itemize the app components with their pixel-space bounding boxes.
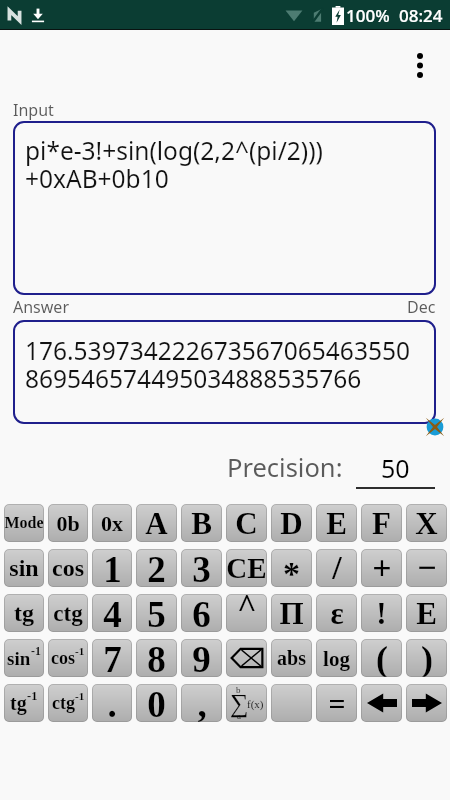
staticText: tg: [14, 600, 34, 627]
button[interactable]: A: [136, 504, 177, 542]
button[interactable]: 0: [136, 684, 177, 722]
button[interactable]: Move cursor right: [406, 684, 447, 722]
staticText: Answer: [13, 296, 69, 318]
button[interactable]: 8: [136, 639, 177, 677]
staticText: -1: [27, 689, 38, 703]
button[interactable]: Move cursor left: [361, 684, 402, 722]
button[interactable]: .: [92, 684, 132, 722]
staticText: 0: [147, 684, 166, 722]
button[interactable]: X: [406, 504, 447, 542]
staticText: 7: [103, 639, 122, 677]
staticText: -1: [31, 645, 41, 658]
staticText: 100%: [346, 4, 390, 27]
staticText: E: [416, 596, 437, 630]
staticText: =: [328, 687, 346, 720]
button[interactable]: *: [271, 549, 312, 587]
button[interactable]: !: [361, 594, 402, 632]
button[interactable]: 9: [181, 639, 222, 677]
button[interactable]: 50: [356, 451, 435, 485]
staticText: ,: [197, 684, 207, 722]
button[interactable]: abs: [271, 639, 312, 677]
button[interactable]: 7: [92, 639, 132, 677]
button[interactable]: 3: [181, 549, 222, 587]
button[interactable]: Resize answer field: [425, 417, 445, 437]
staticText: .: [107, 684, 117, 722]
button[interactable]: C: [226, 504, 267, 542]
staticText: F: [372, 506, 391, 540]
staticText: 1: [103, 549, 122, 587]
button[interactable]: [271, 684, 312, 722]
button[interactable]: +: [361, 549, 402, 587]
staticText: 6: [192, 594, 211, 632]
staticText: 0b: [56, 511, 80, 535]
button[interactable]: ctg: [48, 684, 88, 722]
button[interactable]: 0b: [48, 504, 88, 542]
button[interactable]: sin: [4, 549, 44, 587]
button[interactable]: cos: [48, 549, 88, 587]
button[interactable]: 0x: [92, 504, 132, 542]
staticText: cos: [52, 555, 84, 582]
staticText: 8: [147, 639, 166, 677]
staticText: Dec: [407, 296, 436, 318]
button[interactable]: D: [271, 504, 312, 542]
staticText: 08:24: [399, 4, 443, 27]
button[interactable]: Sum: [226, 684, 267, 722]
staticText: /: [332, 549, 342, 587]
staticText: 5: [147, 594, 166, 632]
button[interactable]: pi*e-3!+sin(log(2,2^(pi/2))) +0xAB+0b10: [13, 121, 436, 295]
button[interactable]: More options: [402, 47, 438, 83]
button[interactable]: 5: [136, 594, 177, 632]
button[interactable]: /: [316, 549, 357, 587]
staticText: b: [236, 685, 241, 695]
staticText: *: [283, 555, 300, 587]
staticText: A: [145, 506, 168, 540]
button[interactable]: 1: [92, 549, 132, 587]
button[interactable]: =: [316, 684, 357, 722]
staticText: Input: [13, 99, 54, 121]
staticText: 0x: [101, 511, 123, 535]
staticText: !: [376, 596, 387, 630]
button[interactable]: Backspace: [226, 639, 267, 677]
staticText: Precision:: [227, 450, 343, 485]
button[interactable]: Mode: [4, 504, 44, 542]
button[interactable]: ): [406, 639, 447, 677]
button[interactable]: tg: [4, 684, 44, 722]
button[interactable]: ,: [181, 684, 222, 722]
button[interactable]: ε: [316, 594, 357, 632]
button[interactable]: cos: [48, 639, 88, 677]
staticText: ctg: [53, 601, 83, 626]
button[interactable]: B: [181, 504, 222, 542]
staticText: +: [372, 549, 392, 587]
button[interactable]: (: [361, 639, 402, 677]
staticText: -1: [75, 690, 85, 702]
button[interactable]: F: [361, 504, 402, 542]
button[interactable]: ctg: [48, 594, 88, 632]
button[interactable]: tg: [4, 594, 44, 632]
staticText: C: [235, 506, 258, 540]
staticText: 3: [192, 549, 211, 587]
staticText: CE: [226, 552, 267, 584]
staticText: ε: [330, 596, 344, 630]
staticText: log: [323, 647, 350, 670]
staticText: 2: [147, 549, 166, 587]
button[interactable]: log: [316, 639, 357, 677]
staticText: −: [417, 549, 437, 587]
staticText: E: [326, 506, 347, 540]
button[interactable]: 2: [136, 549, 177, 587]
staticText: sin: [7, 648, 31, 669]
button[interactable]: sin: [4, 639, 44, 677]
button[interactable]: E: [316, 504, 357, 542]
staticText: ctg: [52, 693, 75, 713]
staticText: tg: [10, 692, 27, 714]
button[interactable]: Π: [271, 594, 312, 632]
staticText: X: [415, 506, 438, 540]
button[interactable]: ^: [226, 594, 267, 632]
button[interactable]: CE: [226, 549, 267, 587]
staticText: 50: [381, 451, 410, 485]
button[interactable]: 176.539734222673567065463550 86954657449…: [13, 320, 436, 424]
staticText: Mode: [4, 514, 44, 532]
button[interactable]: 6: [181, 594, 222, 632]
button[interactable]: 4: [92, 594, 132, 632]
button[interactable]: −: [406, 549, 447, 587]
button[interactable]: E: [406, 594, 447, 632]
